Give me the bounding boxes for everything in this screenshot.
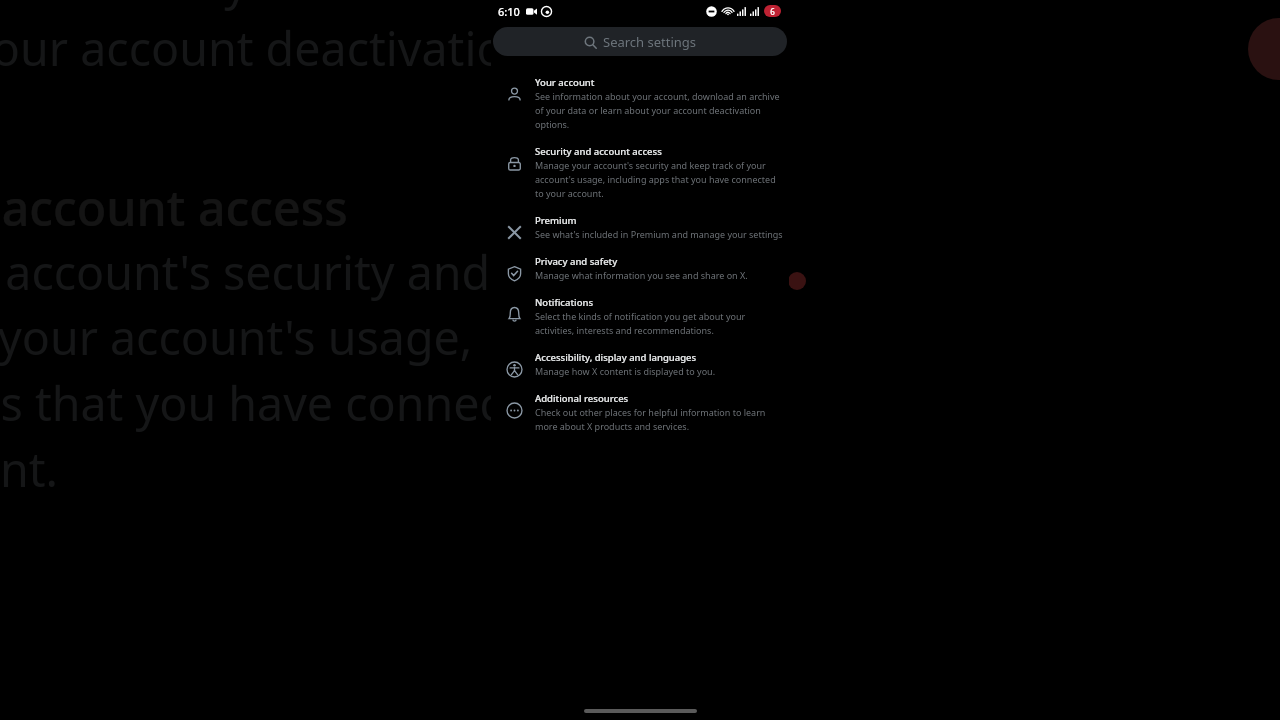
staticText: Security and account access bbox=[535, 145, 662, 158]
other: Home indicator bbox=[584, 709, 697, 713]
staticText: Search settings bbox=[603, 33, 697, 51]
button[interactable]: Additional resources bbox=[491, 388, 789, 443]
staticText: See what's included in Premium and manag… bbox=[535, 228, 783, 240]
staticText: 6 bbox=[770, 6, 775, 17]
staticText: Manage your account's security and keep … bbox=[0, 240, 585, 501]
staticText: 6:10 bbox=[498, 4, 520, 19]
staticText: Check out other places for helpful infor… bbox=[535, 406, 785, 433]
staticText: Manage what information you see and shar… bbox=[535, 269, 748, 281]
button[interactable]: Accessibility, display and languages bbox=[491, 347, 789, 388]
button[interactable]: Search settings bbox=[493, 27, 787, 56]
staticText: Manage your account's security and keep … bbox=[535, 159, 785, 200]
staticText: Privacy and safety bbox=[535, 255, 618, 268]
staticText: Select the kinds of notification you get… bbox=[535, 310, 785, 337]
button[interactable]: Security and account access bbox=[491, 141, 789, 210]
staticText: See information about your account, down… bbox=[535, 90, 785, 131]
staticText: Premium bbox=[535, 214, 577, 227]
button[interactable]: Privacy and safety bbox=[491, 251, 789, 292]
button[interactable]: Your account bbox=[491, 72, 789, 141]
staticText: Accessibility, display and languages bbox=[535, 351, 697, 364]
staticText: Your account bbox=[535, 76, 595, 89]
staticText: Manage how X content is displayed to you… bbox=[535, 365, 716, 377]
staticText: Notifications bbox=[535, 296, 594, 309]
button[interactable]: Notifications bbox=[491, 292, 789, 347]
staticText: See information about your account, down… bbox=[0, 0, 585, 146]
staticText: Additional resources bbox=[535, 392, 629, 405]
button[interactable]: Premium bbox=[491, 210, 789, 251]
staticText: Security and account access bbox=[0, 174, 348, 240]
